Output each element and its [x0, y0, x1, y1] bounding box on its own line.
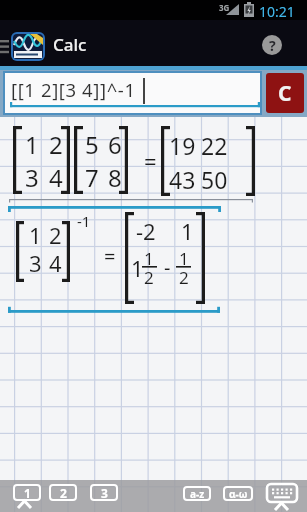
- staticText: 2: [144, 266, 154, 289]
- staticText: 3: [29, 248, 42, 278]
- button[interactable]: [[1 2][3 4]]^-1: [3, 71, 262, 115]
- staticText: -1: [77, 211, 91, 231]
- staticText: 3: [25, 161, 39, 194]
- staticText: α-ω: [229, 487, 248, 501]
- staticText: 10:21: [259, 2, 295, 21]
- staticText: 1: [24, 485, 31, 501]
- button[interactable]: α-ω: [223, 486, 253, 501]
- button[interactable]: [267, 484, 297, 502]
- staticText: 8: [108, 161, 122, 194]
- staticText: 2: [49, 128, 63, 161]
- button[interactable]: 2: [49, 484, 77, 501]
- staticText: C: [278, 79, 292, 108]
- staticText: 22: [201, 130, 228, 161]
- staticText: 19: [169, 130, 196, 161]
- staticText: 1: [144, 247, 154, 270]
- staticText: 3G: [219, 2, 230, 13]
- button[interactable]: 3: [90, 484, 118, 501]
- staticText: 1: [29, 220, 42, 250]
- staticText: [[1 2][3 4]]^-1: [11, 77, 136, 102]
- button[interactable]: C: [266, 73, 304, 113]
- staticText: 50: [201, 164, 228, 195]
- staticText: a-z: [190, 487, 205, 501]
- button[interactable]: a-z: [183, 486, 211, 501]
- staticText: 2: [179, 266, 189, 289]
- staticText: 5: [85, 128, 99, 161]
- staticText: -: [164, 254, 171, 281]
- button[interactable]: ?: [262, 35, 282, 55]
- staticText: 2: [60, 485, 67, 501]
- staticText: 1: [131, 253, 144, 283]
- button[interactable]: [11, 32, 45, 61]
- staticText: 1: [179, 247, 189, 270]
- staticText: 4: [49, 248, 62, 278]
- staticText: 43: [169, 164, 196, 195]
- staticText: 1: [25, 128, 39, 161]
- staticText: Calc: [53, 33, 87, 56]
- staticText: ?: [269, 36, 276, 55]
- staticText: 3: [101, 485, 108, 501]
- staticText: =: [144, 146, 157, 176]
- staticText: =: [104, 243, 116, 270]
- staticText: 7: [85, 161, 99, 194]
- staticText: 2: [49, 220, 62, 250]
- staticText: -2: [136, 216, 156, 246]
- staticText: 6: [108, 128, 122, 161]
- button[interactable]: 1: [13, 484, 41, 501]
- staticText: 4: [49, 161, 63, 194]
- staticText: 1: [181, 216, 194, 246]
